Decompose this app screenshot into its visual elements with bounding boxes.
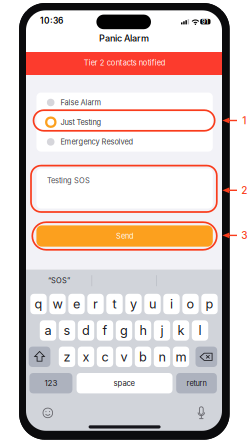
- staticText: 2: [241, 184, 247, 196]
- staticText: 1: [242, 114, 246, 127]
- button[interactable]: y: [125, 294, 142, 314]
- button[interactable]: Send: [36, 225, 213, 247]
- staticText: x: [82, 349, 89, 364]
- staticText: space: [113, 378, 135, 388]
- staticText: y: [130, 296, 137, 312]
- staticText: Tier 2 contacts notified: [84, 58, 166, 67]
- staticText: 123: [44, 378, 57, 388]
- staticText: s: [63, 323, 70, 338]
- staticText: r: [93, 296, 98, 312]
- button[interactable]: space: [77, 373, 172, 393]
- button[interactable]: Shift: [29, 347, 50, 367]
- button[interactable]: s: [59, 320, 75, 341]
- staticText: t: [112, 296, 116, 312]
- staticText: Panic Alarm: [99, 33, 149, 44]
- button[interactable]: v: [116, 347, 132, 367]
- staticText: f: [102, 323, 107, 338]
- staticText: q: [34, 296, 42, 312]
- staticText: Testing SOS: [47, 176, 90, 185]
- staticText: e: [73, 296, 80, 312]
- staticText: o: [186, 296, 194, 312]
- staticText: d: [82, 323, 90, 338]
- button[interactable]: Testing SOS: [36, 168, 213, 208]
- staticText: p: [205, 296, 213, 312]
- button[interactable]: g: [116, 320, 132, 341]
- button[interactable]: i: [163, 294, 180, 314]
- button[interactable]: Dictation: [194, 406, 208, 420]
- staticText: 10:36: [40, 15, 63, 26]
- staticText: return: [186, 379, 206, 388]
- button[interactable]: b: [135, 347, 151, 367]
- button[interactable]: x: [78, 347, 94, 367]
- button[interactable]: q: [30, 294, 47, 314]
- staticText: z: [63, 349, 70, 364]
- button[interactable]: a: [40, 320, 56, 341]
- staticText: w: [52, 296, 62, 312]
- button[interactable]: k: [173, 320, 189, 341]
- staticText: l: [198, 323, 201, 338]
- button[interactable]: Just Testing: [36, 112, 213, 132]
- button[interactable]: f: [97, 320, 113, 341]
- staticText: c: [101, 349, 108, 364]
- staticText: v: [120, 349, 127, 364]
- button[interactable]: z: [59, 347, 75, 367]
- button[interactable]: Emergency Resolved: [36, 132, 213, 152]
- button[interactable]: Emoji: [41, 406, 55, 420]
- staticText: 3: [241, 229, 247, 241]
- staticText: h: [139, 323, 146, 338]
- button[interactable]: e: [68, 294, 85, 314]
- button[interactable]: 123: [29, 373, 72, 393]
- button[interactable]: t: [106, 294, 123, 314]
- button[interactable]: o: [182, 294, 199, 314]
- button[interactable]: l: [192, 320, 208, 341]
- button[interactable]: c: [97, 347, 113, 367]
- staticText: “SOS”: [48, 276, 70, 285]
- staticText: Send: [116, 232, 133, 240]
- staticText: Just Testing: [60, 118, 101, 127]
- staticText: j: [160, 323, 163, 338]
- button[interactable]: u: [144, 294, 161, 314]
- staticText: Emergency Resolved: [60, 137, 133, 146]
- button[interactable]: j: [154, 320, 170, 341]
- button[interactable]: p: [201, 294, 218, 314]
- button[interactable]: r: [87, 294, 104, 314]
- staticText: u: [149, 296, 156, 312]
- button[interactable]: w: [49, 294, 66, 314]
- button[interactable]: m: [173, 347, 189, 367]
- staticText: i: [170, 296, 173, 312]
- button[interactable]: n: [154, 347, 170, 367]
- staticText: n: [158, 349, 165, 364]
- button[interactable]: d: [78, 320, 94, 341]
- staticText: False Alarm: [60, 98, 101, 107]
- button[interactable]: Delete: [195, 347, 217, 367]
- button[interactable]: return: [176, 373, 217, 393]
- button[interactable]: False Alarm: [36, 93, 213, 112]
- staticText: k: [177, 323, 184, 338]
- staticText: g: [120, 323, 128, 338]
- staticText: b: [139, 349, 147, 364]
- button[interactable]: h: [135, 320, 151, 341]
- staticText: a: [44, 323, 51, 338]
- staticText: 91: [202, 18, 209, 25]
- staticText: m: [175, 349, 186, 364]
